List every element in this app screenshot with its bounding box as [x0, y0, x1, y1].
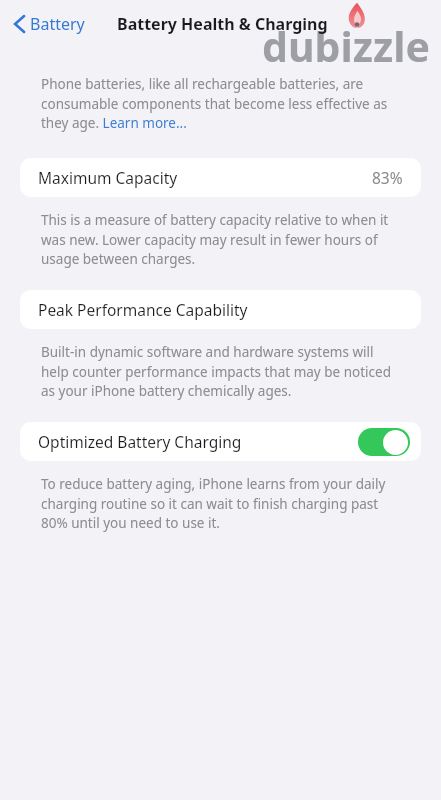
- button[interactable]: Optimized Battery Charging toggle, on: [358, 428, 410, 456]
- staticText: dubizzle: [262, 18, 430, 74]
- staticText: Peak Performance Capability: [38, 299, 248, 320]
- staticText: Maximum Capacity: [38, 167, 178, 188]
- staticText: Phone batteries, like all rechargeable b…: [41, 75, 395, 132]
- staticText: 83%: [372, 167, 403, 188]
- staticText: Battery: [30, 13, 85, 35]
- button[interactable]: Battery: [8, 9, 91, 39]
- staticText: This is a measure of battery capacity re…: [41, 211, 395, 268]
- button[interactable]: Peak Performance Capability: [20, 290, 421, 329]
- button[interactable]: Maximum Capacity: [20, 158, 421, 197]
- staticText: Optimized Battery Charging: [38, 431, 242, 452]
- button[interactable]: Optimized Battery Charging: [20, 422, 421, 461]
- staticText: Built-in dynamic software and hardware s…: [41, 343, 395, 400]
- staticText: To reduce battery aging, iPhone learns f…: [41, 475, 395, 532]
- staticText: Battery Health & Charging: [117, 13, 328, 35]
